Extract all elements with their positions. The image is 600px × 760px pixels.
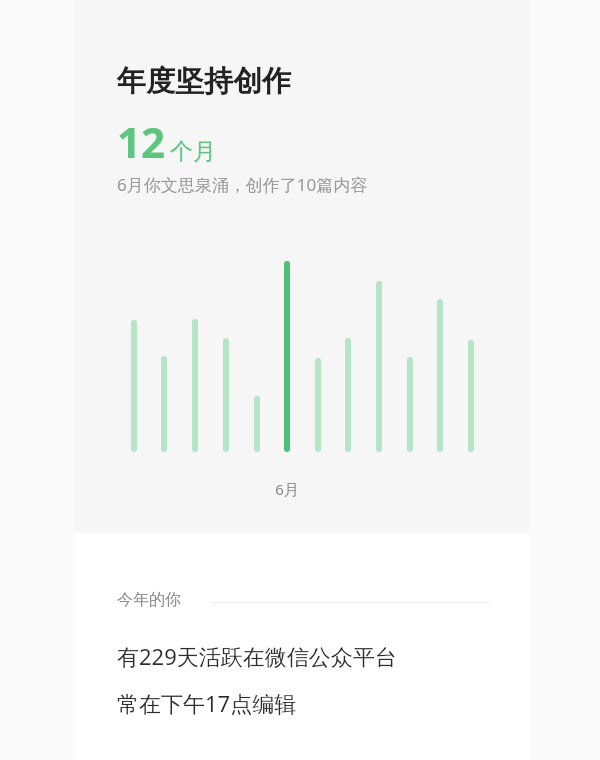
button[interactable]: 常在下午17点编辑 — [117, 688, 297, 718]
staticText: 6月 — [257, 479, 317, 499]
staticText: 常在下午17点编辑 — [117, 688, 297, 718]
button[interactable]: 6月你文思泉涌，创作了10篇内容 — [117, 173, 368, 196]
button[interactable]: 年度坚持创作 — [117, 63, 291, 100]
staticText: 6月你文思泉涌，创作了10篇内容 — [117, 173, 368, 196]
button[interactable]: 今年的你 — [117, 590, 181, 610]
button[interactable]: 12 — [117, 113, 216, 170]
other: 每月创作柱状图 — [75, 250, 530, 460]
staticText: 今年的你 — [117, 590, 181, 610]
button[interactable]: 有229天活跃在微信公众平台 — [117, 641, 397, 671]
staticText: 有229天活跃在微信公众平台 — [117, 641, 397, 671]
staticText: 个月 — [170, 137, 216, 166]
staticText: 12 — [117, 113, 166, 170]
staticText: 年度坚持创作 — [117, 63, 291, 100]
